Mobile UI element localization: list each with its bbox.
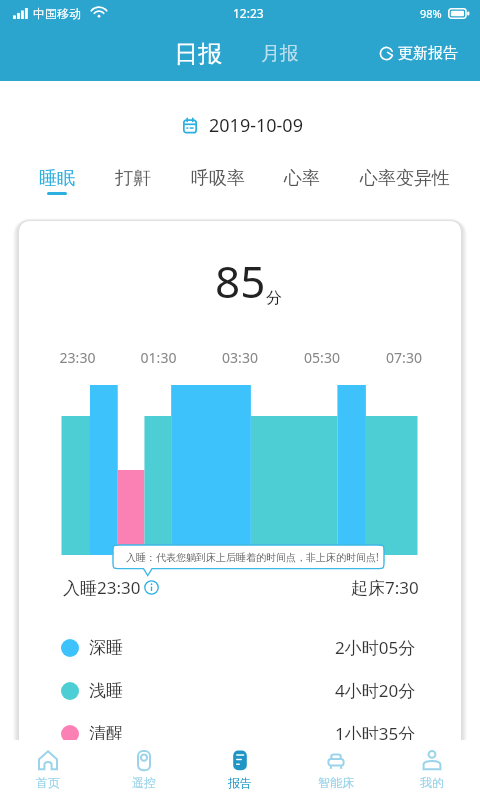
staticText: 03:30	[199, 348, 281, 367]
staticText: 清醒	[89, 723, 123, 744]
staticText: 心率	[284, 167, 320, 190]
staticText: 遥控	[132, 775, 156, 790]
button[interactable]: 遥控	[96, 744, 192, 796]
staticText: 2小时05分	[335, 636, 416, 659]
button[interactable]: 呼吸率	[191, 167, 245, 192]
staticText: 4小时20分	[335, 679, 416, 702]
button[interactable]: 月报	[257, 34, 303, 74]
staticText: 入睡23:30	[63, 576, 141, 599]
staticText: 中国移动	[33, 6, 81, 21]
staticText: 首页	[36, 775, 60, 790]
button[interactable]: 睡眠	[39, 167, 75, 195]
staticText: 心率变异性	[360, 167, 450, 190]
staticText: 日报	[174, 39, 222, 69]
staticText: 23:30	[37, 348, 118, 367]
button[interactable]: 心率	[284, 167, 320, 192]
staticText: 我的	[420, 775, 444, 790]
staticText: 2019-10-09	[209, 113, 303, 138]
staticText: 05:30	[281, 348, 363, 367]
staticText: 智能床	[318, 775, 354, 790]
staticText: 入睡：代表您躺到床上后睡着的时间点，非上床的时间点!	[126, 550, 379, 564]
staticText: 打鼾	[115, 167, 151, 190]
staticText: 12:23	[233, 5, 264, 21]
button[interactable]: 日报	[170, 31, 226, 77]
staticText: 起床7:30	[351, 576, 419, 599]
staticText: 07:30	[363, 348, 445, 367]
staticText: 分	[266, 288, 282, 308]
staticText: 更新报告	[398, 44, 458, 63]
staticText: 深睡	[89, 637, 123, 658]
button[interactable]: 2019-10-09	[174, 109, 307, 142]
staticText: 01:30	[118, 348, 199, 367]
button[interactable]: 更新报告	[369, 36, 480, 71]
button[interactable]: 我的	[384, 744, 480, 796]
button[interactable]: 心率变异性	[360, 167, 450, 192]
button[interactable]: 打鼾	[115, 167, 151, 192]
staticText: 呼吸率	[191, 167, 245, 190]
staticText: 1小时35分	[335, 722, 416, 745]
button[interactable]: 报告	[192, 744, 288, 796]
staticText: 报告	[228, 775, 252, 790]
other: Info	[144, 580, 159, 595]
button[interactable]: 首页	[0, 744, 96, 796]
staticText: 睡眠	[39, 167, 75, 190]
staticText: 月报	[261, 42, 299, 66]
button[interactable]: 智能床	[288, 744, 384, 796]
staticText: 85	[215, 251, 266, 311]
staticText: 浅睡	[89, 680, 123, 701]
staticText: 98%	[420, 6, 442, 21]
